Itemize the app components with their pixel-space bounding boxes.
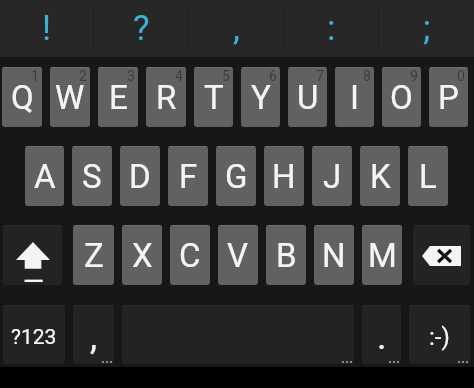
- staticText: Z: [84, 236, 104, 275]
- staticText: 5: [222, 68, 230, 84]
- staticText: :-): [429, 323, 450, 351]
- staticText: G: [225, 157, 248, 196]
- staticText: D: [129, 157, 151, 196]
- staticText: 0: [457, 68, 465, 84]
- button[interactable]: V: [218, 225, 258, 285]
- staticText: X: [132, 236, 153, 275]
- button[interactable]: E: [98, 67, 138, 127]
- button[interactable]: Delete: [413, 225, 470, 285]
- staticText: :: [327, 8, 336, 49]
- button[interactable]: F: [168, 146, 208, 206]
- button[interactable]: .: [362, 305, 401, 364]
- button[interactable]: W: [50, 67, 90, 127]
- staticText: I: [350, 78, 359, 117]
- staticText: ?: [133, 8, 150, 49]
- button[interactable]: Q: [2, 67, 42, 127]
- button[interactable]: P: [429, 67, 468, 127]
- staticText: 9: [410, 68, 418, 84]
- staticText: ,: [233, 8, 240, 49]
- button[interactable]: Z: [73, 225, 114, 285]
- staticText: Y: [251, 78, 271, 117]
- button[interactable]: R: [146, 67, 186, 127]
- button[interactable]: M: [362, 225, 402, 285]
- staticText: A: [34, 157, 56, 196]
- button[interactable]: T: [194, 67, 233, 127]
- staticText: 8: [363, 68, 371, 84]
- staticText: F: [179, 157, 198, 196]
- button[interactable]: ?123: [3, 305, 65, 364]
- button[interactable]: :-): [409, 305, 470, 364]
- button[interactable]: Shift: [3, 225, 62, 285]
- staticText: N: [322, 236, 346, 275]
- button[interactable]: J: [312, 146, 352, 206]
- staticText: L: [419, 157, 437, 196]
- staticText: M: [368, 236, 397, 275]
- staticText: 3: [127, 68, 135, 84]
- button[interactable]: ,: [73, 305, 114, 364]
- staticText: H: [272, 157, 296, 196]
- button[interactable]: B: [266, 225, 306, 285]
- button[interactable]: G: [216, 146, 256, 206]
- staticText: Q: [11, 78, 34, 117]
- staticText: T: [204, 78, 224, 117]
- button[interactable]: Space: [122, 305, 354, 364]
- button[interactable]: D: [120, 146, 160, 206]
- staticText: R: [156, 78, 177, 117]
- staticText: V: [227, 236, 249, 275]
- staticText: P: [438, 78, 459, 117]
- button[interactable]: O: [382, 67, 421, 127]
- staticText: 6: [269, 68, 277, 84]
- button[interactable]: :: [284, 0, 379, 57]
- staticText: ?123: [11, 325, 57, 350]
- staticText: 2: [79, 68, 87, 84]
- staticText: B: [276, 236, 297, 275]
- staticText: W: [55, 78, 85, 117]
- staticText: .: [377, 316, 387, 358]
- staticText: E: [109, 78, 128, 117]
- staticText: C: [179, 236, 201, 275]
- button[interactable]: A: [25, 146, 64, 206]
- button[interactable]: X: [122, 225, 162, 285]
- staticText: 1: [31, 68, 39, 84]
- staticText: K: [370, 157, 391, 196]
- staticText: 7: [316, 68, 324, 84]
- staticText: S: [82, 157, 102, 196]
- button[interactable]: ;: [379, 0, 474, 57]
- button[interactable]: I: [335, 67, 374, 127]
- button[interactable]: C: [170, 225, 210, 285]
- staticText: U: [297, 78, 319, 117]
- staticText: J: [323, 157, 342, 196]
- staticText: 4: [175, 68, 183, 84]
- button[interactable]: !: [0, 0, 94, 57]
- staticText: !: [42, 8, 52, 49]
- button[interactable]: U: [288, 67, 327, 127]
- button[interactable]: H: [264, 146, 304, 206]
- button[interactable]: S: [72, 146, 112, 206]
- staticText: ,: [90, 316, 98, 358]
- button[interactable]: Y: [241, 67, 280, 127]
- button[interactable]: ,: [189, 0, 284, 57]
- button[interactable]: N: [314, 225, 354, 285]
- button[interactable]: ?: [94, 0, 189, 57]
- staticText: O: [390, 78, 413, 117]
- button[interactable]: K: [360, 146, 400, 206]
- staticText: ;: [423, 8, 431, 49]
- button[interactable]: L: [408, 146, 448, 206]
